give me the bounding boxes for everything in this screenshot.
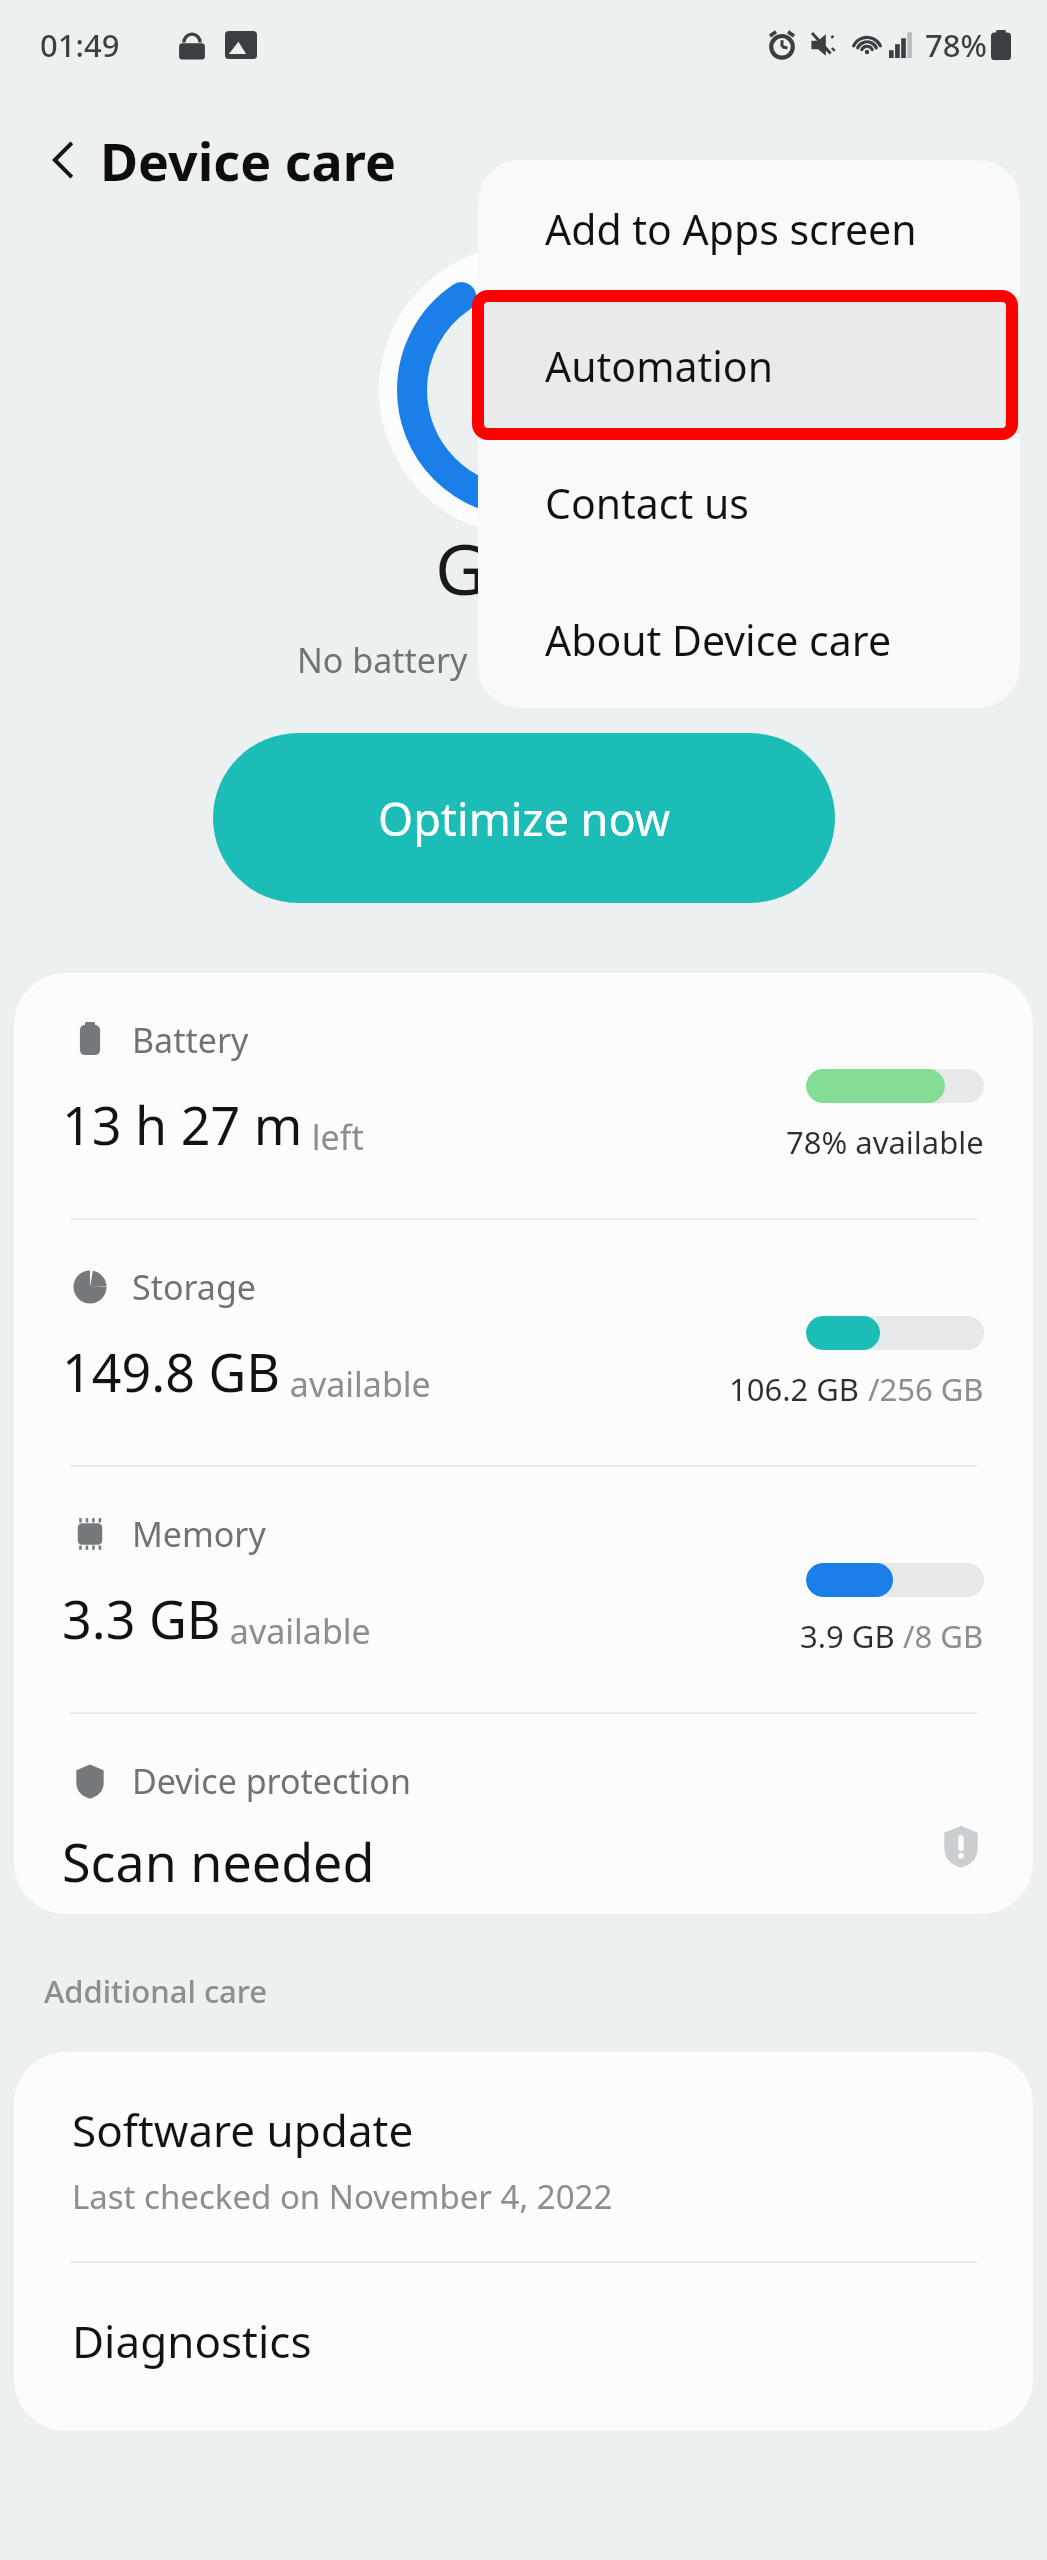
button[interactable]: Battery — [14, 973, 1033, 1218]
staticText: Scan needed — [62, 1826, 375, 1897]
staticText: available — [281, 1361, 431, 1407]
staticText: Optimize now — [378, 788, 671, 849]
staticText: Additional care — [44, 1970, 268, 2012]
staticText: Good — [435, 520, 614, 615]
button[interactable]: About Device care — [478, 571, 1020, 708]
button[interactable]: Storage — [14, 1220, 1033, 1465]
button[interactable]: Device protection — [14, 1714, 1033, 1914]
button[interactable]: Software update — [14, 2052, 1033, 2261]
button[interactable]: Automation — [478, 297, 1020, 434]
button[interactable]: Add to Apps screen — [478, 160, 1020, 297]
staticText: Add to Apps screen — [545, 201, 917, 257]
button[interactable]: Contact us — [478, 434, 1020, 571]
staticText: Device protection — [132, 1758, 411, 1804]
staticText: Device care — [100, 125, 396, 196]
staticText: 78% — [925, 24, 987, 66]
staticText: 106.2 GB — [729, 1368, 868, 1410]
staticText: /256 GB — [868, 1368, 984, 1410]
staticText: Last checked on November 4, 2022 — [72, 2174, 613, 2219]
staticText: 13 h 27 m — [62, 1089, 303, 1160]
staticText: /8 GB — [903, 1615, 984, 1657]
staticText: Storage — [132, 1264, 257, 1310]
button[interactable]: Back — [28, 124, 100, 196]
staticText: Software update — [72, 2100, 414, 2160]
button[interactable]: Diagnostics — [14, 2263, 1033, 2431]
staticText: available — [221, 1608, 371, 1654]
button[interactable]: Optimize now — [213, 733, 835, 903]
staticText: Memory — [132, 1511, 266, 1557]
staticText: About Device care — [545, 612, 892, 668]
staticText: Diagnostics — [72, 2311, 312, 2371]
staticText: Battery — [132, 1017, 249, 1063]
staticText: No battery or security issues — [297, 637, 752, 683]
staticText: Automation — [545, 338, 774, 394]
staticText: 3.9 GB — [800, 1615, 903, 1657]
button[interactable]: Memory — [14, 1467, 1033, 1712]
staticText: left — [303, 1114, 364, 1160]
staticText: 01:49 — [40, 24, 120, 66]
staticText: 78% available — [786, 1121, 984, 1163]
staticText: 3.3 GB — [62, 1583, 221, 1654]
staticText: 149.8 GB — [62, 1336, 281, 1407]
staticText: Contact us — [545, 475, 749, 531]
